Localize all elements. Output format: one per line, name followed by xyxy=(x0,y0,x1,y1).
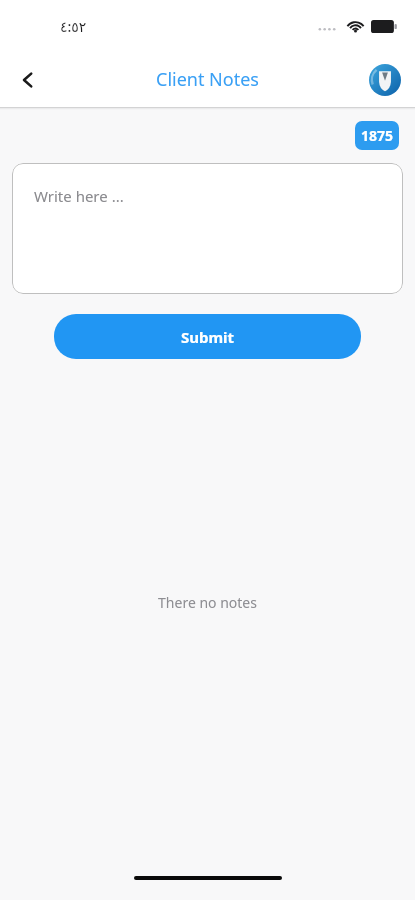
button[interactable]: 1875 xyxy=(355,121,399,150)
staticText: There no notes xyxy=(158,593,257,612)
staticText: Client Notes xyxy=(156,67,259,92)
button[interactable]: App logo xyxy=(365,60,405,100)
staticText: 1875 xyxy=(361,126,394,145)
button[interactable]: Back xyxy=(6,58,50,102)
staticText: Write here ... xyxy=(34,186,124,206)
staticText: Submit xyxy=(181,327,235,347)
button[interactable]: Submit xyxy=(54,314,361,359)
staticText: ٤:٥٢ xyxy=(60,17,87,36)
button[interactable]: Write here ... xyxy=(12,163,403,294)
